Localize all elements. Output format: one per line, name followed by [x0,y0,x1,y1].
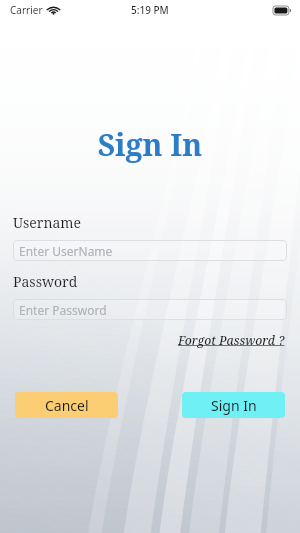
staticText: Enter UserName [19,243,113,259]
button[interactable]: Cancel [15,392,118,418]
button[interactable]: Sign In [182,392,285,418]
staticText: Username [13,213,82,232]
staticText: Cancel [45,396,89,415]
staticText: Enter Password [19,302,107,318]
staticText: Password [13,272,78,291]
staticText: Forgot Password ? [178,332,285,348]
button[interactable]: Enter UserName [13,240,287,261]
staticText: Sign In [0,124,300,165]
button[interactable]: Forgot Password ? [176,330,287,350]
staticText: Sign In [211,396,257,415]
button[interactable]: Enter Password [13,299,287,320]
staticText: Carrier [10,3,43,17]
staticText: 5:19 PM [131,3,169,17]
